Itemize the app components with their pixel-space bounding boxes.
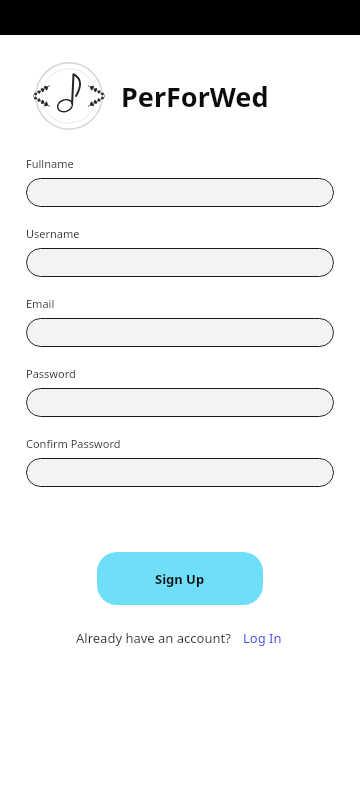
- button[interactable]: Confirm Password: [26, 458, 334, 487]
- staticText: Username: [26, 226, 80, 241]
- button[interactable]: Sign Up: [97, 552, 263, 605]
- staticText: PerForWed: [121, 78, 269, 115]
- button[interactable]: Fullname: [26, 178, 334, 207]
- button[interactable]: Log In: [231, 627, 284, 649]
- staticText: Sign Up: [155, 570, 205, 588]
- staticText: Fullname: [26, 156, 74, 171]
- staticText: Already have an account?: [76, 629, 231, 647]
- staticText: Log In: [243, 629, 282, 647]
- button[interactable]: Password: [26, 388, 334, 417]
- button[interactable]: Username: [26, 248, 334, 277]
- staticText: Email: [26, 296, 55, 311]
- staticText: Confirm Password: [26, 436, 121, 451]
- button[interactable]: Email: [26, 318, 334, 347]
- staticText: Password: [26, 366, 76, 381]
